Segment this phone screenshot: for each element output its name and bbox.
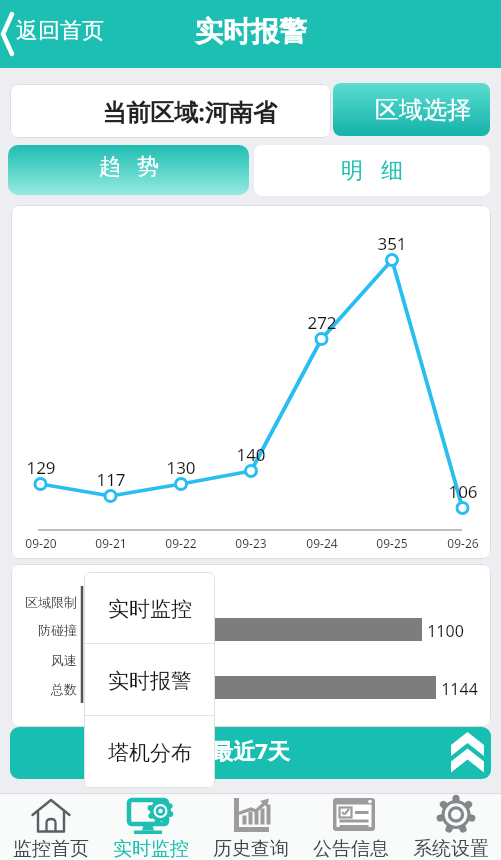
button[interactable]: 返回首页 (16, 0, 116, 65)
staticText: 09-22 (165, 535, 197, 551)
staticText: 历史查询 (213, 837, 289, 860)
button[interactable]: 实时监控 (84, 572, 215, 643)
staticText: 实时报警 (195, 14, 307, 49)
staticText: 风速 (51, 652, 77, 668)
staticText: 09-23 (235, 535, 267, 551)
staticText: 实时监控 (113, 837, 189, 860)
button[interactable]: 实时报警 (84, 644, 215, 715)
staticText: 明 (341, 157, 363, 185)
staticText: 09-25 (376, 535, 408, 551)
staticText: 当前区域:河南省 (102, 95, 277, 128)
button[interactable]: 历史查询 (201, 793, 301, 860)
staticText: 返回首页 (16, 17, 104, 45)
staticText: 09-20 (25, 535, 57, 551)
staticText: 117 (96, 468, 126, 491)
staticText: 实时监控 (108, 596, 192, 622)
button[interactable]: 趋 (8, 145, 249, 195)
staticText: 趋 (99, 153, 121, 181)
staticText: 塔机分布 (108, 740, 192, 766)
staticText: 130 (166, 456, 196, 479)
staticText: 实时报警 (108, 668, 192, 694)
staticText: 区域选择 (375, 95, 471, 125)
button[interactable]: 塔机分布 (84, 716, 215, 787)
button[interactable]: 公告信息 (301, 793, 401, 860)
button[interactable]: 明 (254, 145, 490, 196)
staticText: 1144 (441, 678, 478, 700)
staticText: 09-21 (95, 535, 127, 551)
staticText: 140 (236, 443, 266, 466)
staticText: 09-26 (447, 535, 479, 551)
staticText: 势 (137, 153, 159, 181)
staticText: 129 (26, 456, 56, 479)
staticText: 最近7天 (211, 735, 290, 765)
staticText: 09-24 (306, 535, 338, 551)
staticText: 系统设置 (413, 837, 489, 860)
button[interactable]: 系统设置 (401, 793, 501, 860)
staticText: 区域限制 (25, 594, 77, 610)
staticText: 公告信息 (313, 837, 389, 860)
button[interactable]: 最近7天 (10, 727, 491, 779)
staticText: 细 (381, 157, 403, 185)
staticText: 监控首页 (13, 837, 89, 860)
button[interactable]: 区域选择 (333, 83, 490, 136)
staticText: 351 (377, 232, 407, 255)
staticText: 总数 (51, 681, 77, 697)
staticText: 1100 (427, 620, 464, 642)
button[interactable]: 监控首页 (0, 793, 101, 860)
staticText: 防碰撞 (38, 622, 77, 638)
staticText: 106 (448, 480, 478, 503)
staticText: 272 (307, 311, 337, 334)
button[interactable]: 实时监控 (101, 793, 201, 860)
